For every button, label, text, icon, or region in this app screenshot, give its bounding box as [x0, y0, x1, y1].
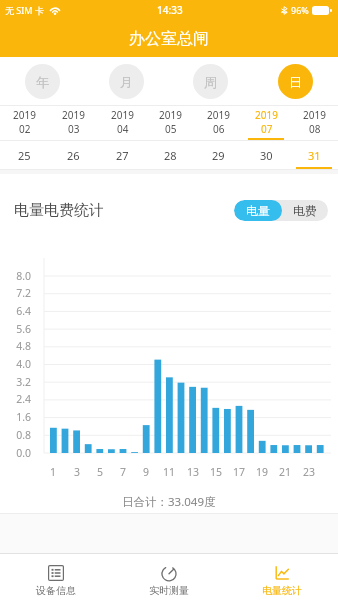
staticText: 26	[67, 148, 80, 163]
staticText: 2019	[111, 108, 134, 122]
staticText: 4.0	[1, 357, 31, 371]
staticText: 14:33	[157, 3, 183, 17]
staticText: 办公室总闸	[129, 29, 209, 49]
staticText: 11	[159, 465, 179, 479]
staticText: 2019	[255, 108, 278, 122]
staticText: 13	[183, 465, 203, 479]
button[interactable]: 26	[49, 141, 98, 169]
staticText: 8.0	[1, 269, 31, 283]
button[interactable]: 30	[242, 141, 290, 169]
staticText: 2019	[303, 108, 326, 122]
staticText: 4.8	[1, 339, 31, 353]
staticText: 04	[117, 122, 129, 136]
staticText: 17	[229, 465, 249, 479]
staticText: 28	[164, 148, 177, 163]
button[interactable]: 电量统计	[225, 554, 338, 600]
staticText: 2019	[159, 108, 182, 122]
staticText: 25	[18, 148, 31, 163]
staticText: 29	[212, 148, 225, 163]
staticText: 3	[67, 465, 87, 479]
staticText: 2019	[207, 108, 230, 122]
staticText: 周	[204, 74, 217, 90]
staticText: 电量	[246, 203, 270, 218]
button[interactable]: 年	[25, 64, 60, 99]
staticText: 2019	[13, 108, 36, 122]
button[interactable]: 28	[146, 141, 194, 169]
button[interactable]: 周	[193, 64, 228, 99]
staticText: 无 SIM 卡	[5, 4, 44, 16]
staticText: 21	[275, 465, 295, 479]
staticText: 05	[165, 122, 177, 136]
staticText: 日合计：33.049度	[122, 494, 216, 510]
staticText: 7.2	[1, 286, 31, 300]
staticText: 19	[252, 465, 272, 479]
staticText: 02	[19, 122, 31, 136]
staticText: 电费	[293, 203, 317, 218]
button[interactable]: 2019	[194, 106, 242, 140]
button[interactable]: 25	[0, 141, 49, 169]
staticText: 03	[68, 122, 80, 136]
staticText: 31	[308, 148, 321, 163]
staticText: 07	[261, 122, 273, 136]
button[interactable]: 2019	[146, 106, 194, 140]
staticText: 08	[309, 122, 321, 136]
staticText: 电量电费统计	[14, 201, 104, 220]
staticText: 7	[113, 465, 133, 479]
button[interactable]: 29	[194, 141, 242, 169]
button[interactable]: 31	[290, 141, 338, 169]
staticText: 1.6	[1, 410, 31, 424]
button[interactable]: 日	[278, 64, 313, 99]
button[interactable]: 2019	[98, 106, 146, 140]
staticText: 6.4	[1, 304, 31, 318]
staticText: 2.4	[1, 392, 31, 406]
staticText: 月	[120, 74, 133, 90]
staticText: 9	[136, 465, 156, 479]
staticText: 23	[299, 465, 319, 479]
staticText: 日	[289, 74, 302, 90]
button[interactable]: 2019	[49, 106, 98, 140]
button[interactable]: 27	[98, 141, 146, 169]
button[interactable]: 设备信息	[0, 554, 112, 600]
staticText: 15	[206, 465, 226, 479]
staticText: 1	[43, 465, 63, 479]
staticText: 0.8	[1, 428, 31, 442]
staticText: 3.2	[1, 375, 31, 389]
button[interactable]: 2019	[242, 106, 290, 140]
button[interactable]: 电量	[234, 200, 282, 221]
button[interactable]: 2019	[290, 106, 338, 140]
staticText: 5.6	[1, 322, 31, 336]
staticText: 2019	[62, 108, 85, 122]
staticText: 0.0	[1, 446, 31, 460]
staticText: 30	[260, 148, 273, 163]
staticText: 27	[116, 148, 129, 163]
staticText: 年	[36, 74, 49, 90]
staticText: 06	[213, 122, 225, 136]
button[interactable]: 2019	[0, 106, 49, 140]
staticText: 5	[90, 465, 110, 479]
button[interactable]: 月	[109, 64, 144, 99]
staticText: 电量统计	[262, 584, 302, 597]
staticText: 96%	[291, 4, 309, 16]
staticText: 设备信息	[36, 584, 76, 597]
button[interactable]: 电费	[282, 200, 328, 221]
button[interactable]: 实时测量	[112, 554, 225, 600]
staticText: 实时测量	[149, 584, 189, 597]
